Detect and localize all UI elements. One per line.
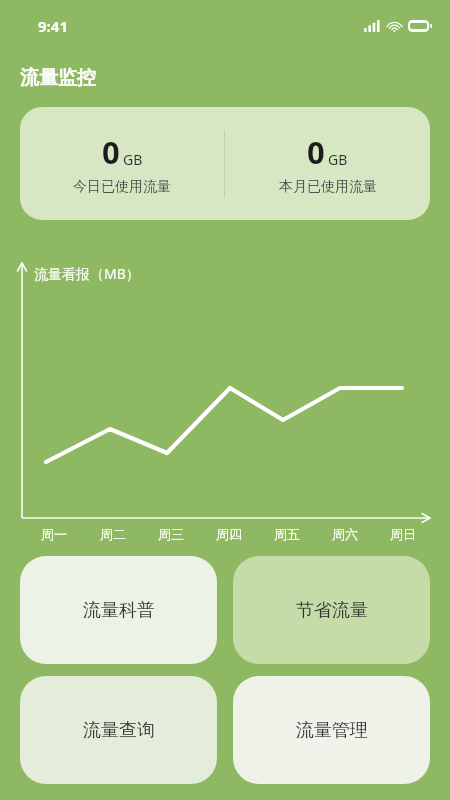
- staticText: 今日已使用流量: [73, 178, 171, 196]
- staticText: 流量管理: [296, 719, 368, 742]
- button[interactable]: 流量查询: [20, 676, 217, 784]
- staticText: 0: [307, 131, 325, 173]
- button[interactable]: 0: [20, 131, 224, 196]
- staticText: 周日: [390, 526, 416, 542]
- staticText: 本月已使用流量: [279, 178, 377, 196]
- staticText: 流量科普: [83, 599, 155, 622]
- staticText: 周一: [41, 526, 67, 542]
- button[interactable]: 流量管理: [233, 676, 430, 784]
- staticText: 周二: [100, 526, 126, 542]
- staticText: 周三: [158, 526, 184, 542]
- staticText: 节省流量: [296, 599, 368, 622]
- button[interactable]: 0: [225, 131, 430, 196]
- staticText: 流量查询: [83, 719, 155, 742]
- staticText: 流量看报（MB）: [34, 264, 140, 283]
- staticText: 0: [102, 131, 120, 173]
- staticText: GB: [123, 150, 143, 169]
- staticText: 周四: [216, 526, 242, 542]
- staticText: GB: [328, 150, 348, 169]
- button[interactable]: 流量科普: [20, 556, 217, 664]
- staticText: 9:41: [38, 16, 68, 36]
- staticText: 周六: [332, 526, 358, 542]
- staticText: 周五: [274, 526, 300, 542]
- button[interactable]: 节省流量: [233, 556, 430, 664]
- staticText: 流量监控: [20, 66, 96, 90]
